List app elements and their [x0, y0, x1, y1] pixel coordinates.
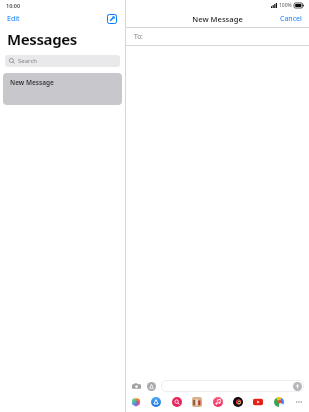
- button[interactable]: Music: [212, 396, 224, 408]
- button[interactable]: YouTube: [252, 396, 264, 408]
- button[interactable]: Camera: [131, 381, 141, 391]
- staticText: Search: [18, 57, 37, 65]
- staticText: To:: [134, 32, 143, 41]
- button[interactable]: Send: [161, 380, 304, 392]
- button[interactable]: Search: [5, 55, 120, 67]
- button[interactable]: Send: [293, 382, 302, 391]
- staticText: New Message: [10, 78, 54, 87]
- button[interactable]: Fitness: [232, 396, 244, 408]
- button[interactable]: Photos: [130, 396, 142, 408]
- staticText: Messages: [7, 29, 77, 49]
- button[interactable]: More apps: [293, 396, 305, 408]
- button[interactable]: Compose new message: [105, 12, 119, 26]
- button[interactable]: To:: [126, 28, 309, 45]
- button[interactable]: Edit: [4, 12, 23, 26]
- staticText: Edit: [7, 14, 20, 24]
- staticText: Cancel: [280, 14, 302, 24]
- button[interactable]: Store: [191, 396, 203, 408]
- button[interactable]: App Store: [150, 396, 162, 408]
- staticText: 10:00: [6, 2, 21, 9]
- button[interactable]: Music search: [171, 396, 183, 408]
- button[interactable]: Maps: [273, 396, 285, 408]
- staticText: New Message: [192, 14, 243, 24]
- button[interactable]: App Store for Messages: [146, 381, 156, 391]
- staticText: 100%: [279, 2, 292, 9]
- button[interactable]: New Message: [3, 73, 122, 105]
- button[interactable]: Cancel: [277, 12, 305, 26]
